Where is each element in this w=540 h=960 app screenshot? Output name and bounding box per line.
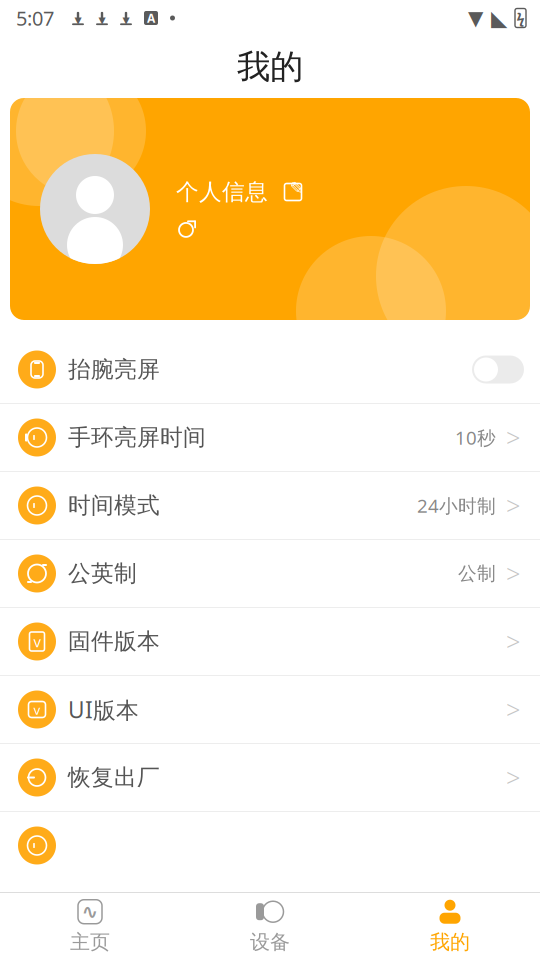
button[interactable]: 恢复出厂 — [0, 744, 540, 812]
button[interactable]: 设备 — [180, 893, 360, 960]
button[interactable]: ∿ — [0, 893, 180, 960]
staticText: 设备 — [250, 930, 290, 954]
staticText: v — [33, 701, 40, 718]
staticText: > — [506, 693, 520, 726]
staticText: ∿ — [81, 900, 98, 923]
staticText: 手环亮屏时间 — [68, 424, 206, 451]
staticText: 10秒 — [455, 425, 496, 450]
staticText: > — [506, 489, 520, 522]
button[interactable]: v — [0, 608, 540, 676]
button[interactable]: 时间模式 — [0, 472, 540, 540]
staticText: ▼ — [74, 15, 81, 26]
staticText: A — [147, 10, 155, 26]
button[interactable]: 个人信息 — [0, 98, 540, 320]
staticText: 主页 — [70, 930, 110, 954]
staticText: ▼ — [468, 7, 483, 29]
staticText: > — [506, 557, 520, 590]
staticText: ✎ — [289, 178, 304, 198]
staticText: 5:07 — [16, 5, 54, 31]
staticText: 24小时制 — [417, 493, 496, 518]
staticText: 我的 — [430, 930, 470, 954]
button[interactable]: 我的 — [360, 893, 540, 960]
staticText: 公制 — [458, 562, 496, 585]
staticText: v — [33, 632, 40, 651]
staticText: > — [506, 421, 520, 454]
staticText: 公英制 — [68, 560, 137, 587]
staticText: 个人信息 — [176, 178, 268, 206]
staticText: 恢复出厂 — [68, 764, 160, 791]
staticText: 我的 — [237, 46, 303, 87]
staticText: UI版本 — [68, 694, 139, 725]
staticText: 时间模式 — [68, 492, 160, 519]
staticText: 固件版本 — [68, 628, 160, 655]
button[interactable]: 抬腕亮屏 — [0, 336, 540, 404]
staticText: ▼ — [98, 15, 105, 26]
staticText: ▼ — [122, 15, 129, 26]
staticText: ϟ — [516, 8, 524, 28]
staticText: ◣ — [491, 6, 507, 30]
button[interactable] — [0, 812, 540, 879]
staticText: 抬腕亮屏 — [68, 356, 160, 383]
staticText: > — [506, 761, 520, 794]
button[interactable]: 手环亮屏时间 — [0, 404, 540, 472]
button[interactable]: 公英制 — [0, 540, 540, 608]
button[interactable]: v — [0, 676, 540, 744]
staticText: > — [506, 625, 520, 658]
